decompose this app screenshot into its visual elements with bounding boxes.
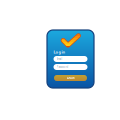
staticText: Password <box>56 65 68 69</box>
staticText: Login <box>53 49 65 55</box>
staticText: Email <box>56 57 62 61</box>
staticText: LOGIN <box>66 76 74 80</box>
button[interactable]: LOGIN <box>54 75 87 81</box>
